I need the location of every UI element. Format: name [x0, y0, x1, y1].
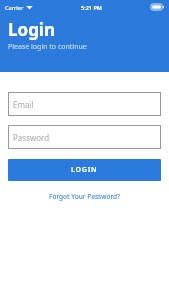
staticText: Email [13, 99, 34, 110]
button[interactable]: LOGIN [8, 159, 161, 181]
button[interactable]: Password [8, 125, 161, 149]
staticText: Login [8, 18, 56, 41]
staticText: LOGIN [71, 165, 98, 175]
button[interactable]: Forgot Your Password? [8, 189, 161, 203]
button[interactable]: Email [8, 92, 161, 116]
staticText: Carrier [5, 4, 24, 11]
staticText: Password [13, 132, 50, 143]
staticText: 5:21 PM [81, 4, 102, 11]
staticText: Forgot Your Password? [49, 192, 120, 201]
staticText: Please login to continue [8, 42, 87, 52]
